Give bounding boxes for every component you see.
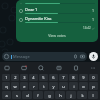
button[interactable]: u	[59, 82, 68, 90]
staticText: w	[13, 84, 17, 89]
button[interactable]: g	[44, 91, 54, 99]
button[interactable]: Clipboard	[54, 63, 64, 73]
button[interactable]: i	[69, 82, 78, 90]
button[interactable]: Dear 1	[16, 0, 98, 42]
button[interactable]: a	[2, 91, 11, 99]
button[interactable]: 9	[79, 74, 88, 81]
button[interactable]: 4	[29, 74, 38, 81]
button[interactable]: View votes	[19, 31, 95, 40]
button[interactable]: r	[29, 82, 38, 90]
staticText: k	[81, 93, 84, 98]
button[interactable]: 1	[2, 74, 10, 81]
staticText: 9	[82, 75, 85, 80]
staticText: h	[59, 93, 62, 98]
staticText: 14:42	[83, 26, 91, 30]
staticText: s	[16, 93, 18, 98]
button[interactable]: 8	[69, 74, 78, 81]
staticText: 8	[72, 75, 75, 80]
staticText: l	[92, 93, 94, 98]
button[interactable]: o	[79, 82, 88, 90]
staticText: 4	[32, 75, 35, 80]
staticText: 2	[14, 75, 17, 80]
other: Attach	[73, 54, 78, 59]
staticText: e	[23, 84, 26, 89]
button[interactable]: t	[39, 82, 48, 90]
other: Camera	[80, 54, 85, 59]
staticText: f	[37, 93, 39, 98]
button[interactable]: f	[33, 91, 43, 99]
button[interactable]: l	[88, 91, 98, 99]
button[interactable]: y	[49, 82, 58, 90]
button[interactable]: 0	[89, 74, 98, 81]
button[interactable]: More	[88, 63, 98, 73]
button[interactable]: Voice message	[89, 52, 98, 61]
staticText: 1	[92, 17, 95, 22]
button[interactable]: j	[66, 91, 76, 99]
button[interactable]: e	[20, 82, 28, 90]
staticText: 5	[42, 75, 45, 80]
staticText: Message	[13, 54, 30, 59]
staticText: 0	[92, 75, 95, 80]
button[interactable]: Emoji	[2, 52, 87, 61]
staticText: 3	[23, 75, 26, 80]
button[interactable]: GIF	[19, 63, 29, 73]
staticText: p	[92, 84, 95, 89]
staticText: t	[43, 84, 45, 89]
button[interactable]: 6	[49, 74, 58, 81]
other: Emoji	[4, 54, 9, 59]
button[interactable]: w	[11, 82, 19, 90]
button[interactable]: q	[2, 82, 10, 90]
staticText: 1	[92, 8, 95, 13]
staticText: 6	[52, 75, 55, 80]
button[interactable]: 7	[59, 74, 68, 81]
staticText: o	[82, 84, 85, 89]
button[interactable]: 3	[20, 74, 28, 81]
button[interactable]: 5	[39, 74, 48, 81]
button[interactable]: s	[12, 91, 21, 99]
button[interactable]: Theme	[71, 63, 81, 73]
staticText: View votes	[48, 33, 66, 38]
button[interactable]: Dear 1	[19, 6, 95, 15]
staticText: a	[5, 93, 8, 98]
button[interactable]	[19, 2, 95, 5]
staticText: i	[73, 84, 75, 89]
staticText: j	[70, 93, 72, 98]
button[interactable]: 2	[11, 74, 19, 81]
button[interactable]: Dynamite Kiss	[19, 15, 95, 24]
staticText: Dear 1	[25, 7, 38, 12]
button[interactable]: d	[22, 91, 32, 99]
staticText: Dynamite Kiss	[25, 16, 52, 21]
staticText: 1	[5, 75, 8, 80]
button[interactable]: p	[89, 82, 98, 90]
button[interactable]: h	[55, 91, 65, 99]
staticText: g	[48, 93, 51, 98]
staticText: r	[33, 84, 35, 89]
staticText: u	[62, 84, 65, 89]
staticText: y	[52, 84, 55, 89]
staticText: q	[5, 84, 8, 89]
button[interactable]: Stickers	[2, 63, 12, 73]
staticText: 7	[62, 75, 65, 80]
button[interactable]: Emoji search	[36, 63, 46, 73]
staticText: d	[26, 93, 29, 98]
button[interactable]: k	[77, 91, 87, 99]
